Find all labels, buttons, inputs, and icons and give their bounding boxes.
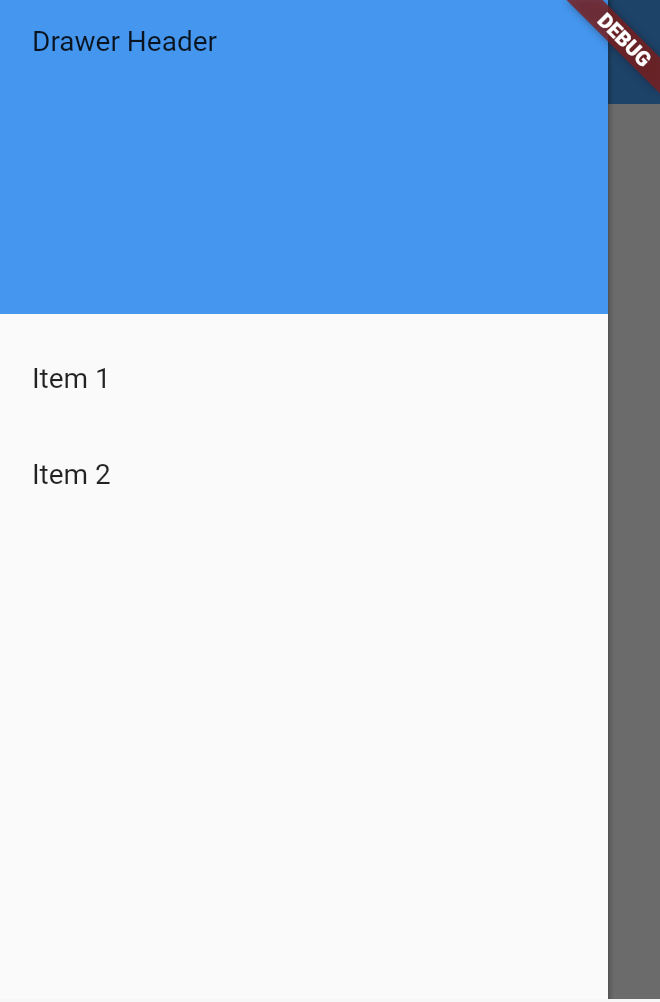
staticText: Item 2: [32, 458, 111, 491]
staticText: Drawer Header: [32, 25, 218, 58]
button[interactable]: Item 2: [0, 426, 608, 522]
button[interactable]: Close navigation drawer: [0, 0, 660, 1002]
button[interactable]: Item 1: [0, 330, 608, 426]
staticText: Item 1: [32, 362, 111, 395]
